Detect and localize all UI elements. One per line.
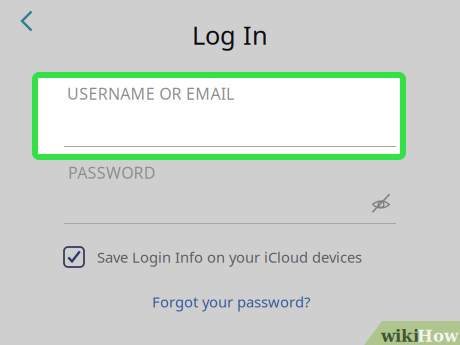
- staticText: Forgot your password?: [152, 292, 310, 311]
- staticText: wiki: [381, 326, 419, 345]
- button[interactable]: Forgot your password?: [144, 287, 318, 316]
- staticText: Save Login Info on your iCloud devices: [97, 247, 362, 267]
- staticText: USERNAME OR EMAIL: [67, 83, 234, 104]
- staticText: PASSWORD: [68, 162, 156, 183]
- button[interactable]: Back: [7, 3, 47, 39]
- staticText: How: [417, 326, 458, 345]
- button[interactable]: Show password: [365, 186, 397, 220]
- button[interactable]: Save Login Info on your iCloud devices: [58, 241, 368, 273]
- staticText: Log In: [192, 18, 268, 52]
